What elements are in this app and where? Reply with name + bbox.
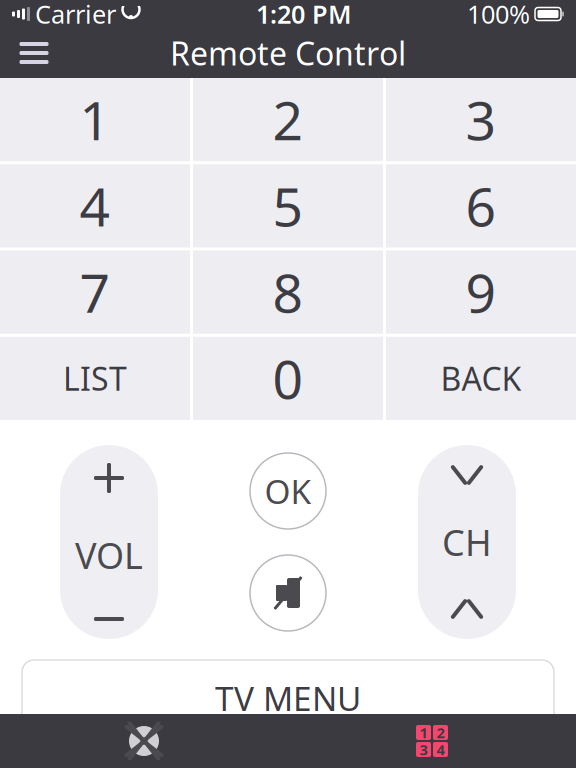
staticText: 1: [79, 84, 110, 155]
staticText: 1:20 PM: [256, 0, 352, 31]
staticText: 9: [465, 257, 496, 327]
button[interactable]: 2: [193, 78, 383, 161]
staticText: 5: [272, 170, 303, 241]
staticText: 100%: [467, 0, 530, 31]
button[interactable]: Menu: [6, 28, 62, 78]
staticText: OK: [264, 469, 311, 513]
button[interactable]: Number pad: [288, 714, 576, 768]
button[interactable]: 8: [193, 250, 383, 334]
button[interactable]: Volume: [60, 445, 158, 639]
staticText: 3: [465, 84, 496, 155]
staticText: LIST: [63, 357, 127, 400]
staticText: BACK: [440, 357, 521, 400]
staticText: Carrier: [35, 0, 116, 31]
staticText: Remote Control: [170, 32, 406, 74]
staticText: TV MENU: [215, 676, 361, 720]
button[interactable]: 4: [0, 164, 190, 247]
button[interactable]: BACK: [386, 337, 576, 420]
button[interactable]: 0: [193, 337, 383, 420]
staticText: CH: [442, 518, 492, 566]
button[interactable]: 3: [386, 78, 576, 161]
button[interactable]: 9: [386, 250, 576, 334]
staticText: 4: [79, 170, 110, 241]
button[interactable]: 5: [193, 164, 383, 247]
button[interactable]: Mute: [250, 555, 326, 631]
button[interactable]: 7: [0, 250, 190, 334]
button[interactable]: Channel: [418, 445, 516, 639]
staticText: 6: [465, 170, 496, 241]
button[interactable]: TV MENU: [22, 660, 554, 738]
staticText: 3: [419, 740, 427, 759]
staticText: 1: [419, 723, 427, 742]
staticText: 7: [79, 257, 110, 327]
staticText: 8: [272, 257, 303, 327]
staticText: 2: [272, 84, 303, 155]
staticText: 4: [436, 740, 444, 759]
staticText: 0: [272, 343, 303, 414]
button[interactable]: 6: [386, 164, 576, 247]
button[interactable]: OK: [250, 453, 326, 529]
button[interactable]: 1: [0, 78, 190, 161]
staticText: 2: [436, 723, 444, 742]
staticText: VOL: [75, 531, 143, 579]
button[interactable]: Directional pad: [0, 714, 288, 768]
button[interactable]: LIST: [0, 337, 190, 420]
